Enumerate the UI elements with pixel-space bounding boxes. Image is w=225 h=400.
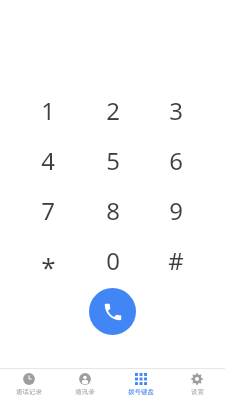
staticText: 拨号键盘	[128, 388, 154, 396]
button[interactable]: *	[19, 237, 77, 283]
button[interactable]: 5	[84, 137, 142, 183]
button[interactable]: 4	[19, 137, 77, 183]
staticText: 7	[41, 194, 55, 227]
staticText: 5	[106, 144, 120, 177]
button[interactable]: 8	[84, 187, 142, 233]
staticText: 9	[169, 194, 183, 227]
button[interactable]: 2	[84, 87, 142, 133]
button[interactable]: 3	[147, 87, 205, 133]
staticText: 0	[106, 244, 120, 277]
button[interactable]: 1	[19, 87, 77, 133]
staticText: 通讯录	[75, 388, 95, 396]
button[interactable]: #	[147, 237, 205, 283]
button[interactable]: Call	[89, 288, 136, 335]
button[interactable]: 通话记录	[0, 369, 57, 396]
staticText: 6	[169, 144, 183, 177]
staticText: 3	[169, 94, 183, 127]
button[interactable]: 设置	[169, 369, 225, 396]
staticText: 8	[106, 194, 120, 227]
button[interactable]: 0	[84, 237, 142, 283]
button[interactable]: 通讯录	[57, 369, 113, 396]
button[interactable]: 6	[147, 137, 205, 183]
button[interactable]: 拨号键盘	[113, 369, 169, 396]
button[interactable]: 9	[147, 187, 205, 233]
staticText: 设置	[191, 388, 204, 396]
staticText: 4	[41, 144, 55, 177]
staticText: 通话记录	[16, 388, 42, 396]
staticText: *	[41, 249, 56, 283]
staticText: #	[168, 244, 184, 277]
staticText: 2	[106, 94, 120, 127]
button[interactable]: 7	[19, 187, 77, 233]
staticText: 1	[41, 94, 55, 127]
